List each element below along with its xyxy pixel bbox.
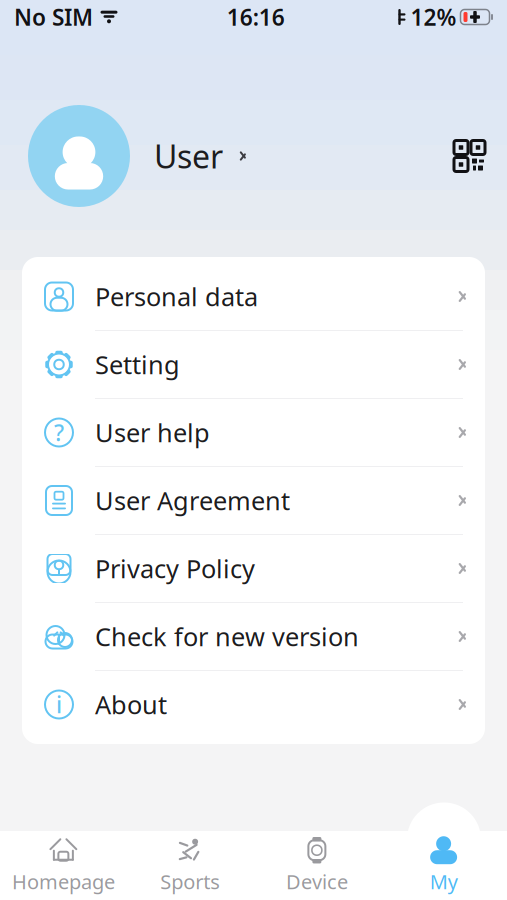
button[interactable]: Personal data [22, 263, 485, 331]
staticText: i [56, 689, 62, 719]
staticText: Device [286, 868, 348, 895]
staticText: 12% [410, 2, 456, 32]
staticText: Check for new version [95, 620, 359, 653]
button[interactable]: Check for new version [22, 603, 485, 671]
button[interactable]: i [22, 671, 485, 738]
button[interactable]: Scan QR code [444, 130, 495, 181]
button[interactable]: Setting [22, 331, 485, 399]
staticText: Privacy Policy [95, 552, 255, 585]
button[interactable]: User [28, 105, 243, 207]
button[interactable]: Privacy Policy [22, 535, 485, 603]
staticText: Sports [160, 868, 220, 895]
staticText: User help [95, 416, 210, 449]
staticText: Setting [95, 348, 180, 381]
button[interactable]: Homepage [0, 828, 127, 900]
button[interactable]: User Agreement [22, 467, 485, 535]
staticText: User Agreement [95, 484, 290, 517]
button[interactable]: ? [22, 399, 485, 467]
staticText: 16:16 [227, 2, 285, 32]
staticText: My [430, 868, 458, 895]
button[interactable]: My [380, 828, 507, 900]
staticText: No SIM [14, 2, 93, 32]
staticText: Personal data [95, 280, 258, 313]
button[interactable]: Device [253, 828, 380, 900]
staticText: Homepage [12, 868, 115, 895]
button[interactable]: Sports [127, 828, 254, 900]
staticText: ? [54, 417, 64, 447]
staticText: User [154, 135, 223, 177]
staticText: About [95, 688, 167, 721]
